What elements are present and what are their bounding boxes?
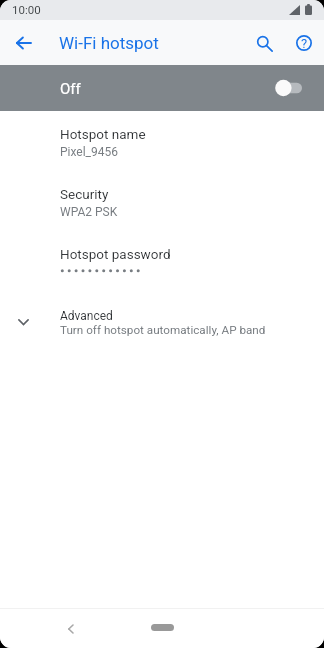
- button[interactable]: Security: [0, 176, 324, 236]
- staticText: Wi-Fi hotspot: [59, 33, 159, 53]
- staticText: WPA2 PSK: [60, 205, 118, 219]
- button[interactable]: Back: [56, 614, 84, 642]
- staticText: Pixel_9456: [60, 145, 118, 159]
- staticText: Hotspot password: [60, 246, 171, 262]
- button[interactable]: Advanced: [0, 296, 324, 356]
- staticText: Hotspot name: [60, 126, 146, 142]
- staticText: Security: [60, 186, 109, 202]
- button[interactable]: Search: [246, 25, 282, 61]
- staticText: Off: [60, 80, 81, 98]
- button[interactable]: Hotspot password: [0, 236, 324, 296]
- staticText: 10:00: [12, 3, 41, 16]
- button[interactable]: Navigate up: [7, 26, 40, 59]
- button[interactable]: Help: [286, 25, 322, 61]
- staticText: ?: [301, 36, 308, 51]
- button[interactable]: Home: [151, 624, 174, 631]
- button[interactable]: Hotspot name: [0, 116, 324, 176]
- staticText: Advanced: [60, 309, 113, 323]
- button[interactable]: Off: [0, 65, 324, 111]
- staticText: Turn off hotspot automatically, AP band: [60, 323, 266, 337]
